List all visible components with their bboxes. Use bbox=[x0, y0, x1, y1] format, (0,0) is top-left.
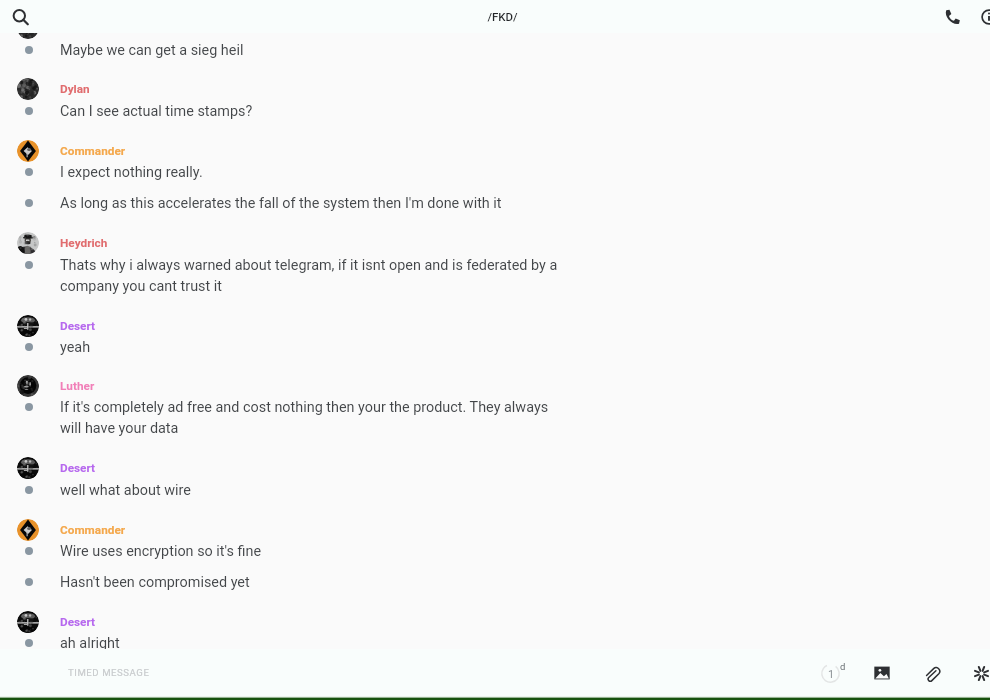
button[interactable]: Desert bbox=[60, 459, 170, 477]
staticText: Luther bbox=[60, 379, 95, 393]
button[interactable]: Profile picture bbox=[17, 17, 39, 39]
button[interactable]: Desert profile picture bbox=[17, 457, 39, 479]
button[interactable]: Luther bbox=[60, 377, 170, 395]
button[interactable]: Attach file bbox=[911, 653, 951, 693]
button[interactable]: Luther profile picture bbox=[17, 375, 39, 397]
staticText: Commander bbox=[60, 144, 126, 158]
staticText: Thats why i always warned about telegram… bbox=[60, 257, 558, 274]
staticText: will have your data bbox=[60, 420, 179, 437]
button[interactable]: company you cant trust it bbox=[0, 275, 990, 297]
button[interactable]: Conversation info bbox=[972, 0, 990, 33]
staticText: Desert bbox=[60, 461, 96, 475]
staticText: /FKD/ bbox=[487, 10, 518, 23]
button[interactable]: Wire uses encryption so it's fine bbox=[0, 540, 990, 562]
button[interactable]: TIMED MESSAGE bbox=[68, 649, 798, 696]
button[interactable]: Commander profile picture bbox=[17, 140, 39, 162]
staticText: Can I see actual time stamps? bbox=[60, 103, 253, 120]
staticText: d bbox=[840, 661, 846, 672]
button[interactable]: Send image bbox=[862, 653, 902, 693]
button[interactable]: Can I see actual time stamps? bbox=[0, 100, 990, 122]
button[interactable]: More options bbox=[961, 653, 990, 693]
button[interactable]: Commander bbox=[60, 142, 170, 160]
staticText: Heydrich bbox=[60, 236, 108, 250]
button[interactable]: Desert bbox=[60, 317, 170, 335]
button[interactable]: If it's completely ad free and cost noth… bbox=[0, 396, 990, 418]
staticText: Desert bbox=[60, 319, 96, 333]
staticText: If it's completely ad free and cost noth… bbox=[60, 399, 549, 416]
button[interactable]: Thats why i always warned about telegram… bbox=[0, 254, 990, 276]
button[interactable]: Heydrich profile picture bbox=[17, 232, 39, 254]
staticText: Maybe we can get a sieg heil bbox=[60, 42, 244, 59]
button[interactable]: will have your data bbox=[0, 417, 990, 439]
button[interactable]: Commander bbox=[60, 521, 170, 539]
staticText: company you cant trust it bbox=[60, 278, 223, 295]
staticText: Wire uses encryption so it's fine bbox=[60, 543, 262, 560]
staticText: ah alright bbox=[60, 635, 120, 652]
button[interactable]: As long as this accelerates the fall of … bbox=[0, 192, 990, 214]
button[interactable]: Desert profile picture bbox=[17, 315, 39, 337]
staticText: well what about wire bbox=[60, 482, 191, 499]
button[interactable]: Heydrich bbox=[60, 234, 170, 252]
button[interactable]: Commander profile picture bbox=[17, 519, 39, 541]
button[interactable]: Hasn't been compromised yet bbox=[0, 571, 990, 593]
staticText: 1 bbox=[828, 668, 835, 681]
button[interactable]: Call bbox=[935, 0, 968, 33]
button[interactable]: Search bbox=[6, 0, 35, 33]
staticText: Dylan bbox=[60, 82, 90, 96]
staticText: yeah bbox=[60, 339, 91, 356]
button[interactable]: Desert profile picture bbox=[17, 611, 39, 633]
button[interactable]: yeah bbox=[0, 336, 990, 358]
button[interactable]: Message timer bbox=[811, 654, 852, 692]
staticText: Commander bbox=[60, 523, 126, 537]
staticText: Desert bbox=[60, 615, 96, 629]
button[interactable]: ah alright bbox=[0, 632, 990, 654]
button[interactable]: Desert bbox=[60, 613, 170, 631]
button[interactable]: Dylan profile picture bbox=[17, 78, 39, 100]
staticText: I expect nothing really. bbox=[60, 164, 203, 181]
button[interactable]: Maybe we can get a sieg heil bbox=[0, 39, 990, 61]
staticText: Hasn't been compromised yet bbox=[60, 574, 250, 591]
button[interactable]: I expect nothing really. bbox=[0, 161, 990, 183]
button[interactable]: well what about wire bbox=[0, 479, 990, 501]
staticText: TIMED MESSAGE bbox=[68, 667, 150, 678]
button[interactable]: Dylan bbox=[60, 80, 170, 98]
staticText: As long as this accelerates the fall of … bbox=[60, 195, 502, 212]
